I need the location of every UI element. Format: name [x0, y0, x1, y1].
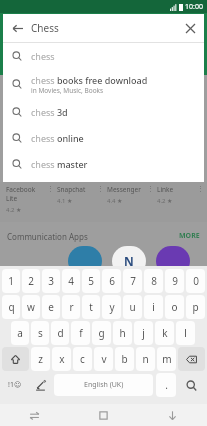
staticText: q	[8, 300, 15, 314]
staticText: a	[17, 326, 23, 340]
staticText: o	[171, 300, 178, 314]
button[interactable]: Backspace	[178, 347, 205, 371]
staticText: Facebook Lite	[6, 185, 36, 203]
button[interactable]: 6	[102, 269, 121, 293]
button[interactable]: Hide keyboard	[138, 404, 207, 426]
button[interactable]: j	[134, 321, 153, 345]
staticText: f	[79, 326, 83, 340]
button[interactable]: Search	[178, 373, 205, 397]
button[interactable]: chess	[3, 43, 204, 69]
button[interactable]: t	[82, 295, 100, 319]
button[interactable]: Back	[3, 14, 31, 42]
button[interactable]: q	[2, 295, 20, 319]
button[interactable]: English (UK)	[54, 374, 153, 396]
button[interactable]: 1	[2, 269, 20, 293]
button[interactable]: 9	[165, 269, 184, 293]
staticText: e	[48, 300, 54, 314]
staticText: MORE	[179, 231, 200, 241]
button[interactable]: o	[165, 295, 184, 319]
staticText: y	[109, 300, 115, 314]
staticText: chess master	[31, 158, 88, 170]
staticText: s	[38, 326, 43, 340]
staticText: 3	[48, 274, 54, 288]
button[interactable]: 0	[186, 269, 205, 293]
button[interactable]: m	[157, 347, 176, 371]
staticText: u	[129, 300, 136, 314]
button[interactable]: f	[71, 321, 90, 345]
staticText: 6	[109, 274, 115, 288]
staticText: z	[38, 352, 43, 366]
staticText: c	[80, 352, 85, 366]
staticText: k	[162, 326, 168, 340]
button[interactable]: Home	[69, 404, 138, 426]
staticText: p	[192, 300, 199, 314]
staticText: b	[121, 352, 128, 366]
staticText: Snapchat	[57, 185, 86, 194]
button[interactable]: 4	[62, 269, 80, 293]
staticText: 4.2 ★	[157, 197, 173, 205]
button[interactable]: 5	[82, 269, 100, 293]
staticText: 4.1 ★	[57, 197, 73, 205]
button[interactable]: g	[92, 321, 111, 345]
staticText: chess 3d	[31, 106, 68, 118]
staticText: v	[101, 352, 107, 366]
staticText: 0	[193, 274, 199, 288]
staticText: j	[142, 326, 145, 340]
button[interactable]: Shift	[2, 347, 29, 371]
button[interactable]: d	[51, 321, 69, 345]
button[interactable]: Clear	[176, 14, 204, 42]
button[interactable]: chess online	[3, 125, 204, 151]
button[interactable]: w	[22, 295, 40, 319]
staticText: chess online	[31, 132, 84, 144]
button[interactable]: i	[144, 295, 163, 319]
button[interactable]: 7	[123, 269, 142, 293]
button[interactable]: chess books free download	[3, 69, 204, 99]
staticText: w	[27, 300, 35, 314]
button[interactable]: y	[102, 295, 121, 319]
staticText: Communication Apps	[7, 231, 88, 242]
staticText: ⋮	[47, 185, 54, 193]
staticText: Linke	[157, 185, 174, 194]
staticText: 5	[88, 274, 94, 288]
staticText: d	[57, 326, 64, 340]
button[interactable]: k	[155, 321, 174, 345]
staticText: !1☺	[8, 380, 22, 390]
staticText: l	[184, 326, 187, 340]
button[interactable]: n	[136, 347, 155, 371]
button[interactable]: z	[31, 347, 50, 371]
button[interactable]: p	[186, 295, 205, 319]
button[interactable]: h	[113, 321, 132, 345]
staticText: 4.4 ★	[107, 197, 123, 205]
button[interactable]: 3	[42, 269, 60, 293]
button[interactable]: Symbols	[2, 373, 27, 397]
button[interactable]: u	[123, 295, 142, 319]
button[interactable]: s	[31, 321, 49, 345]
staticText: .	[165, 378, 168, 392]
button[interactable]: MORE	[179, 231, 200, 241]
staticText: N	[124, 253, 134, 269]
staticText: t	[89, 300, 93, 314]
button[interactable]: 8	[144, 269, 163, 293]
button[interactable]: .	[156, 373, 176, 397]
button[interactable]: c	[73, 347, 92, 371]
button[interactable]: r	[62, 295, 80, 319]
button[interactable]: Switch input	[0, 404, 69, 426]
staticText: 7	[130, 274, 136, 288]
button[interactable]: x	[52, 347, 71, 371]
button[interactable]: chess 3d	[3, 99, 204, 125]
button[interactable]: 2	[22, 269, 40, 293]
button[interactable]: e	[42, 295, 60, 319]
button[interactable]: chess master	[3, 151, 204, 177]
staticText: h	[119, 326, 126, 340]
button[interactable]: b	[115, 347, 134, 371]
button[interactable]: l	[176, 321, 195, 345]
button[interactable]: Handwriting	[29, 373, 51, 397]
staticText: chess books free download	[31, 74, 148, 86]
button[interactable]: Back	[3, 14, 204, 42]
staticText: Messenger	[107, 185, 141, 194]
button[interactable]: a	[11, 321, 29, 345]
staticText: English (UK)	[84, 380, 124, 390]
staticText: ⋮	[97, 185, 104, 193]
staticText: ⋮	[147, 185, 154, 193]
button[interactable]: v	[94, 347, 113, 371]
